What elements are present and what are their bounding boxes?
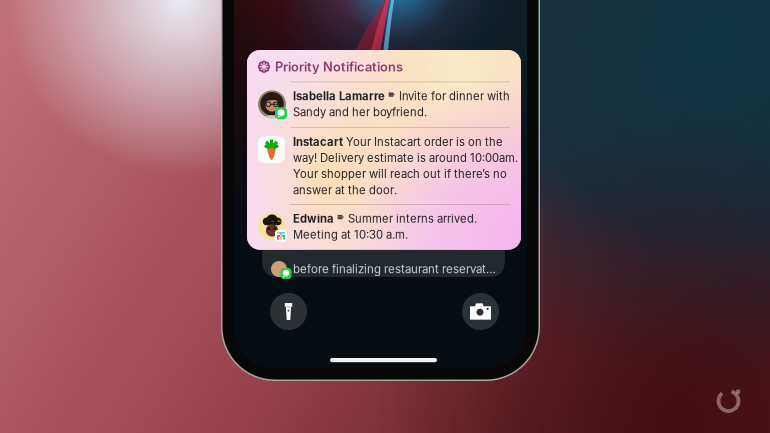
staticText: Priority Notifications bbox=[275, 59, 403, 74]
staticText: Summer interns arrived. bbox=[345, 212, 477, 226]
staticText: Edwina bbox=[293, 212, 334, 226]
staticText: Your shopper will reach out if there’s n… bbox=[293, 167, 507, 181]
staticText: Invite for dinner with bbox=[396, 89, 510, 103]
staticText: Sandy and her boyfriend. bbox=[293, 105, 427, 119]
staticText: Your Instacart order is on the bbox=[343, 135, 503, 149]
button[interactable]: Instacart bbox=[247, 128, 640, 204]
button[interactable]: before finalizing restaurant reservation… bbox=[262, 235, 505, 277]
staticText: answer at the door. bbox=[293, 183, 397, 197]
staticText: way! Delivery estimate is around 10:00am… bbox=[293, 151, 518, 165]
button[interactable]: Edwina bbox=[247, 205, 599, 250]
button[interactable]: Isabella Lamarre bbox=[247, 82, 632, 127]
staticText: Meeting at 10:30 a.m. bbox=[293, 228, 408, 242]
button[interactable]: Flashlight bbox=[270, 293, 307, 330]
staticText: Instacart bbox=[293, 135, 343, 149]
button[interactable]: Camera bbox=[462, 293, 499, 330]
staticText: before finalizing restaurant reservation… bbox=[293, 262, 497, 276]
staticText: Isabella Lamarre bbox=[293, 89, 385, 103]
